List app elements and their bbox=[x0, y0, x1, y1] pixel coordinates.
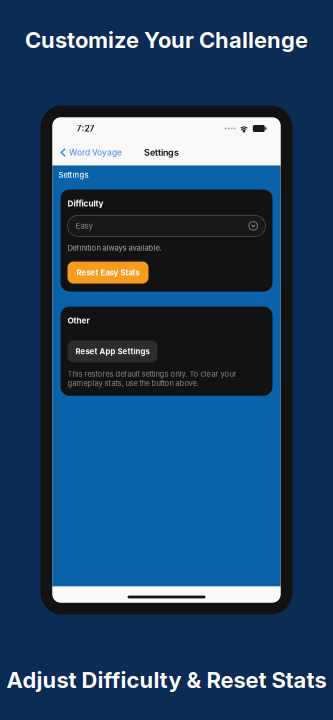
staticText: Customize Your Challenge bbox=[25, 27, 308, 53]
staticText: Adjust Difficulty & Reset Stats bbox=[6, 667, 326, 693]
staticText: Other bbox=[67, 316, 89, 325]
staticText: Settings bbox=[144, 147, 179, 158]
staticText: Word Voyage bbox=[69, 147, 122, 158]
staticText: This restores default settings only. To … bbox=[67, 369, 236, 388]
button[interactable]: Easy bbox=[67, 215, 265, 236]
staticText: Easy bbox=[75, 221, 92, 231]
button[interactable]: Word Voyage bbox=[52, 142, 122, 163]
staticText: Definition always available. bbox=[67, 243, 161, 253]
staticText: Difficulty bbox=[67, 198, 103, 208]
button[interactable]: Reset Easy Stats bbox=[67, 262, 148, 284]
staticText: Settings bbox=[58, 170, 88, 179]
staticText: Reset Easy Stats bbox=[76, 268, 139, 277]
staticText: 7:27 bbox=[76, 123, 94, 134]
button[interactable]: Reset App Settings bbox=[67, 340, 157, 362]
staticText: Reset App Settings bbox=[75, 347, 149, 356]
button[interactable]: Settings bbox=[122, 142, 179, 163]
